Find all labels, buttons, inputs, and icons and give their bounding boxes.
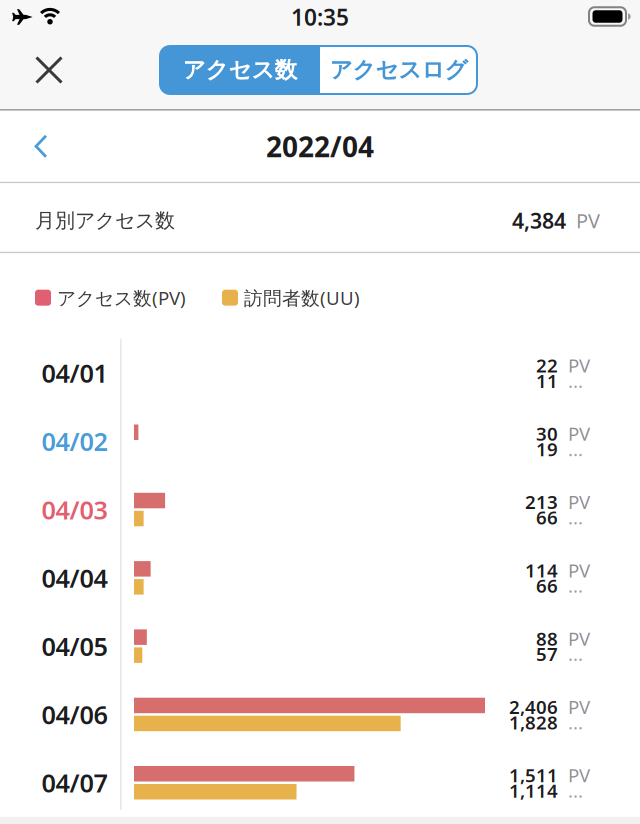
staticText: 2022/04 bbox=[266, 128, 374, 165]
button[interactable]: Back bbox=[34, 134, 47, 158]
button[interactable]: アクセスログ bbox=[320, 46, 477, 94]
staticText: 1,114 bbox=[509, 778, 558, 803]
staticText: 4,384 bbox=[512, 206, 566, 235]
staticText: 04/03 bbox=[41, 493, 107, 526]
staticText: ... bbox=[568, 778, 583, 803]
staticText: 22 bbox=[536, 353, 558, 378]
staticText: アクセス数 bbox=[182, 56, 297, 84]
staticText: PV bbox=[568, 694, 590, 719]
staticText: ... bbox=[568, 368, 583, 393]
staticText: 66 bbox=[536, 573, 558, 598]
staticText: 57 bbox=[536, 641, 558, 666]
staticText: 88 bbox=[536, 626, 558, 651]
staticText: 10:35 bbox=[291, 2, 349, 32]
staticText: 04/04 bbox=[41, 561, 107, 595]
staticText: 訪問者数(UU) bbox=[244, 285, 360, 310]
staticText: アクセスログ bbox=[329, 56, 467, 84]
staticText: 19 bbox=[536, 437, 558, 461]
staticText: PV bbox=[568, 763, 590, 787]
staticText: 11 bbox=[536, 368, 558, 393]
staticText: 66 bbox=[536, 505, 558, 530]
staticText: 30 bbox=[536, 421, 558, 446]
staticText: PV bbox=[568, 353, 590, 378]
staticText: 04/05 bbox=[41, 629, 107, 663]
staticText: ... bbox=[568, 437, 583, 461]
staticText: ... bbox=[568, 573, 583, 598]
staticText: PV bbox=[568, 626, 590, 651]
staticText: ... bbox=[568, 505, 583, 530]
staticText: 04/01 bbox=[41, 356, 107, 390]
staticText: PV bbox=[568, 558, 590, 583]
staticText: ... bbox=[568, 710, 583, 735]
staticText: 114 bbox=[525, 558, 558, 583]
staticText: 月別アクセス数 bbox=[35, 208, 175, 233]
staticText: 1,828 bbox=[509, 710, 558, 735]
staticText: 2,406 bbox=[509, 694, 558, 719]
button[interactable]: アクセス数 bbox=[160, 46, 320, 94]
staticText: 04/07 bbox=[41, 766, 107, 799]
staticText: PV bbox=[568, 421, 590, 446]
button[interactable]: Close bbox=[35, 56, 63, 84]
staticText: PV bbox=[568, 489, 590, 514]
staticText: 213 bbox=[525, 489, 558, 514]
staticText: 04/02 bbox=[41, 424, 107, 458]
staticText: PV bbox=[576, 207, 600, 234]
staticText: 1,511 bbox=[509, 763, 558, 787]
staticText: 04/06 bbox=[41, 698, 107, 731]
staticText: ... bbox=[568, 641, 583, 666]
staticText: アクセス数(PV) bbox=[57, 285, 186, 310]
